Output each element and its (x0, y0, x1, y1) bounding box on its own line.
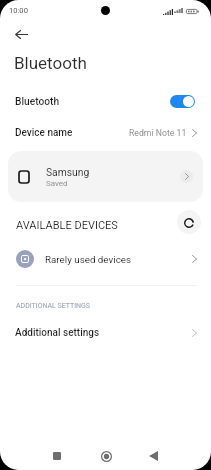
staticText: Device name (15, 127, 73, 139)
button[interactable]: Additional settings (0, 322, 211, 344)
button[interactable]: Device settings (180, 170, 193, 183)
button[interactable]: Recent apps (42, 441, 72, 470)
button[interactable]: Home (91, 441, 121, 470)
button[interactable]: Back (138, 441, 168, 470)
staticText: Redmi Note 11 (129, 128, 187, 138)
staticText: 10:00 (9, 6, 28, 15)
staticText: ADDITIONAL SETTINGS (16, 302, 91, 310)
staticText: AVAILABLE DEVICES (16, 219, 118, 232)
staticText: Saved (46, 179, 68, 188)
button[interactable]: Device name (0, 122, 211, 144)
staticText: Additional settings (15, 327, 100, 339)
button[interactable]: Samsung (8, 151, 203, 202)
staticText: Rarely used devices (45, 254, 132, 265)
staticText: Bluetooth (14, 53, 87, 73)
button[interactable]: Bluetooth (0, 90, 211, 113)
button[interactable]: Rarely used devices (0, 246, 211, 272)
button[interactable]: Refresh (177, 210, 201, 234)
staticText: Samsung (46, 166, 90, 178)
staticText: Bluetooth (15, 96, 60, 108)
button[interactable]: Back (8, 21, 34, 47)
